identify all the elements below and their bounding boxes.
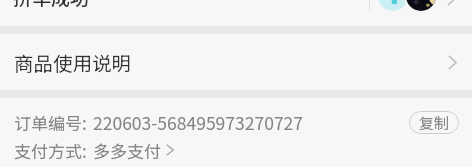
staticText: 复制: [419, 112, 450, 134]
button[interactable]: 查看拼单详情: [443, 0, 459, 10]
button[interactable]: 复制: [409, 111, 459, 134]
button[interactable]: 订单编号:: [0, 109, 472, 135]
staticText: 多多支付: [93, 138, 161, 163]
staticText: 订单编号:: [14, 110, 87, 135]
staticText: 220603-568495973270727: [93, 110, 304, 135]
staticText: 拼单成功: [13, 0, 90, 11]
staticText: 商品使用说明: [14, 48, 132, 76]
staticText: 支付方式:: [14, 138, 87, 163]
button[interactable]: 支付方式:: [0, 137, 184, 163]
button[interactable]: 商品使用说明: [0, 34, 472, 90]
button[interactable]: [0, 0, 472, 26]
